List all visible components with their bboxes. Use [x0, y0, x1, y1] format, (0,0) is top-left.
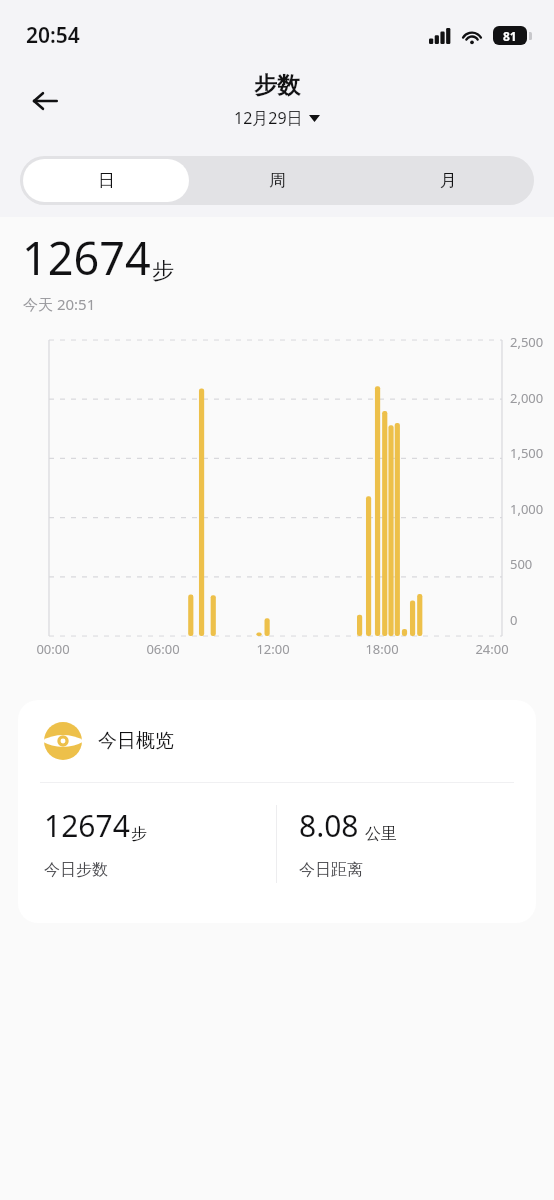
staticText: 1,500 — [510, 444, 544, 462]
staticText: 12674 — [44, 805, 130, 846]
staticText: 日 — [98, 170, 115, 191]
staticText: 12月29日 — [234, 107, 303, 129]
staticText: 00:00 — [36, 640, 70, 658]
staticText: 1,000 — [510, 500, 544, 518]
button[interactable]: 12月29日 — [230, 105, 324, 131]
staticText: 0 — [510, 611, 518, 629]
staticText: 步 — [152, 257, 174, 285]
staticText: 06:00 — [146, 640, 180, 658]
button[interactable]: 今日概览 — [18, 700, 536, 923]
staticText: 今日概览 — [98, 729, 174, 753]
staticText: 今日距离 — [299, 860, 363, 880]
staticText: 18:00 — [365, 640, 399, 658]
staticText: 24:00 — [475, 640, 509, 658]
staticText: 周 — [269, 170, 286, 191]
staticText: 12674 — [22, 227, 151, 288]
staticText: 81 — [503, 28, 517, 44]
staticText: 8.08 — [299, 805, 359, 846]
staticText: 500 — [510, 555, 533, 573]
staticText: 20:54 — [26, 21, 80, 50]
staticText: 步 — [131, 824, 147, 844]
staticText: 月 — [440, 170, 457, 191]
button[interactable]: 日 — [23, 159, 189, 202]
button[interactable]: 月 — [366, 159, 531, 202]
button[interactable]: 周 — [195, 159, 360, 202]
staticText: 2,000 — [510, 389, 544, 407]
staticText: 12:00 — [256, 640, 290, 658]
staticText: 2,500 — [510, 333, 544, 351]
staticText: 今日步数 — [44, 860, 108, 880]
staticText: 步数 — [254, 71, 300, 100]
button[interactable]: Back — [20, 76, 70, 126]
staticText: 公里 — [365, 824, 397, 844]
staticText: 今天 20:51 — [23, 294, 96, 314]
